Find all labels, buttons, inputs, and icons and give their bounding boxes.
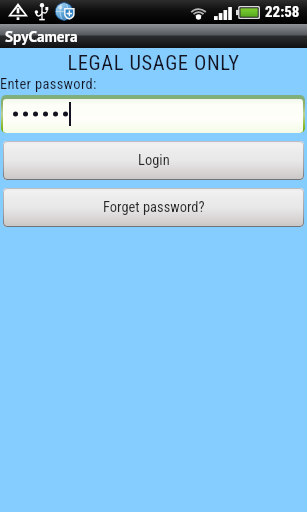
button[interactable]: Forget password? xyxy=(3,188,304,227)
staticText: Enter password: xyxy=(0,76,97,93)
staticText: SpyCamera xyxy=(5,26,78,46)
staticText: 22:58 xyxy=(265,3,300,21)
staticText: Login xyxy=(138,152,170,169)
staticText: LEGAL USAGE ONLY xyxy=(0,51,307,75)
button[interactable]: Password field xyxy=(1,95,305,133)
button[interactable]: Login xyxy=(3,141,304,180)
staticText: Forget password? xyxy=(103,199,205,216)
